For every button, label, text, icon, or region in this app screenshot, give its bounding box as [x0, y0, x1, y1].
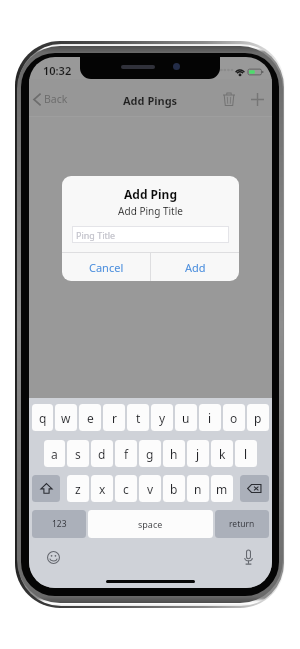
button[interactable]: Delete [218, 88, 240, 110]
staticText: Add Pings [123, 93, 178, 108]
staticText: c [123, 481, 129, 497]
button[interactable]: Add [246, 88, 268, 110]
staticText: h [170, 446, 178, 462]
staticText: l [244, 446, 248, 462]
staticText: s [75, 446, 81, 462]
button[interactable]: Dictation [237, 546, 259, 568]
staticText: Back [44, 92, 68, 106]
staticText: e [87, 410, 94, 426]
button[interactable]: Key [32, 475, 60, 502]
button[interactable]: u [175, 404, 197, 431]
staticText: v [147, 481, 154, 497]
staticText: Add Ping [62, 186, 239, 202]
button[interactable]: y [151, 404, 173, 431]
staticText: Cancel [89, 260, 124, 275]
staticText: m [216, 481, 228, 497]
staticText: 123 [52, 518, 67, 530]
button[interactable]: a [44, 440, 65, 467]
button[interactable]: s [67, 440, 89, 467]
button[interactable]: t [127, 404, 149, 431]
button[interactable]: c [115, 475, 137, 502]
button[interactable]: Add [151, 253, 239, 281]
staticText: g [146, 446, 154, 462]
button[interactable]: i [199, 404, 221, 431]
staticText: i [208, 410, 212, 426]
staticText: r [112, 410, 117, 426]
button[interactable]: h [163, 440, 185, 467]
staticText: o [230, 410, 238, 426]
staticText: x [99, 481, 106, 497]
button[interactable]: return [215, 510, 269, 538]
staticText: return [229, 518, 255, 530]
button[interactable]: l [235, 440, 257, 467]
staticText: j [196, 446, 200, 462]
button[interactable]: z [67, 475, 89, 502]
button[interactable]: r [103, 404, 125, 431]
button[interactable]: e [79, 404, 101, 431]
button[interactable]: v [139, 475, 161, 502]
button[interactable]: w [55, 404, 77, 431]
button[interactable]: m [211, 475, 233, 502]
staticText: w [61, 410, 71, 426]
staticText: Add Ping Title [62, 204, 239, 218]
staticText: space [138, 518, 163, 530]
button[interactable]: k [211, 440, 233, 467]
staticText: d [98, 446, 106, 462]
button[interactable]: b [163, 475, 185, 502]
staticText: z [75, 481, 81, 497]
button[interactable]: 123 [32, 510, 86, 538]
button[interactable]: Back [29, 87, 76, 111]
button[interactable]: Key [240, 475, 269, 502]
button[interactable]: q [32, 404, 53, 431]
button[interactable]: space [88, 510, 213, 538]
button[interactable]: o [223, 404, 245, 431]
staticText: y [159, 410, 166, 426]
staticText: n [194, 481, 202, 497]
button[interactable]: Emoji [42, 546, 64, 568]
staticText: k [219, 446, 226, 462]
staticText: q [39, 410, 47, 426]
button[interactable]: p [247, 404, 269, 431]
button[interactable]: x [91, 475, 113, 502]
staticText: Ping Title [76, 229, 116, 241]
staticText: u [182, 410, 190, 426]
staticText: t [136, 410, 141, 426]
staticText: a [51, 446, 58, 462]
button[interactable]: g [139, 440, 161, 467]
button[interactable]: Cancel [62, 253, 150, 281]
button[interactable]: n [187, 475, 209, 502]
button[interactable]: j [187, 440, 209, 467]
staticText: Add [185, 260, 206, 275]
staticText: b [170, 481, 178, 497]
staticText: f [124, 446, 129, 462]
button[interactable]: f [115, 440, 137, 467]
button[interactable]: d [91, 440, 113, 467]
staticText: p [254, 410, 262, 426]
staticText: 10:32 [43, 63, 72, 78]
